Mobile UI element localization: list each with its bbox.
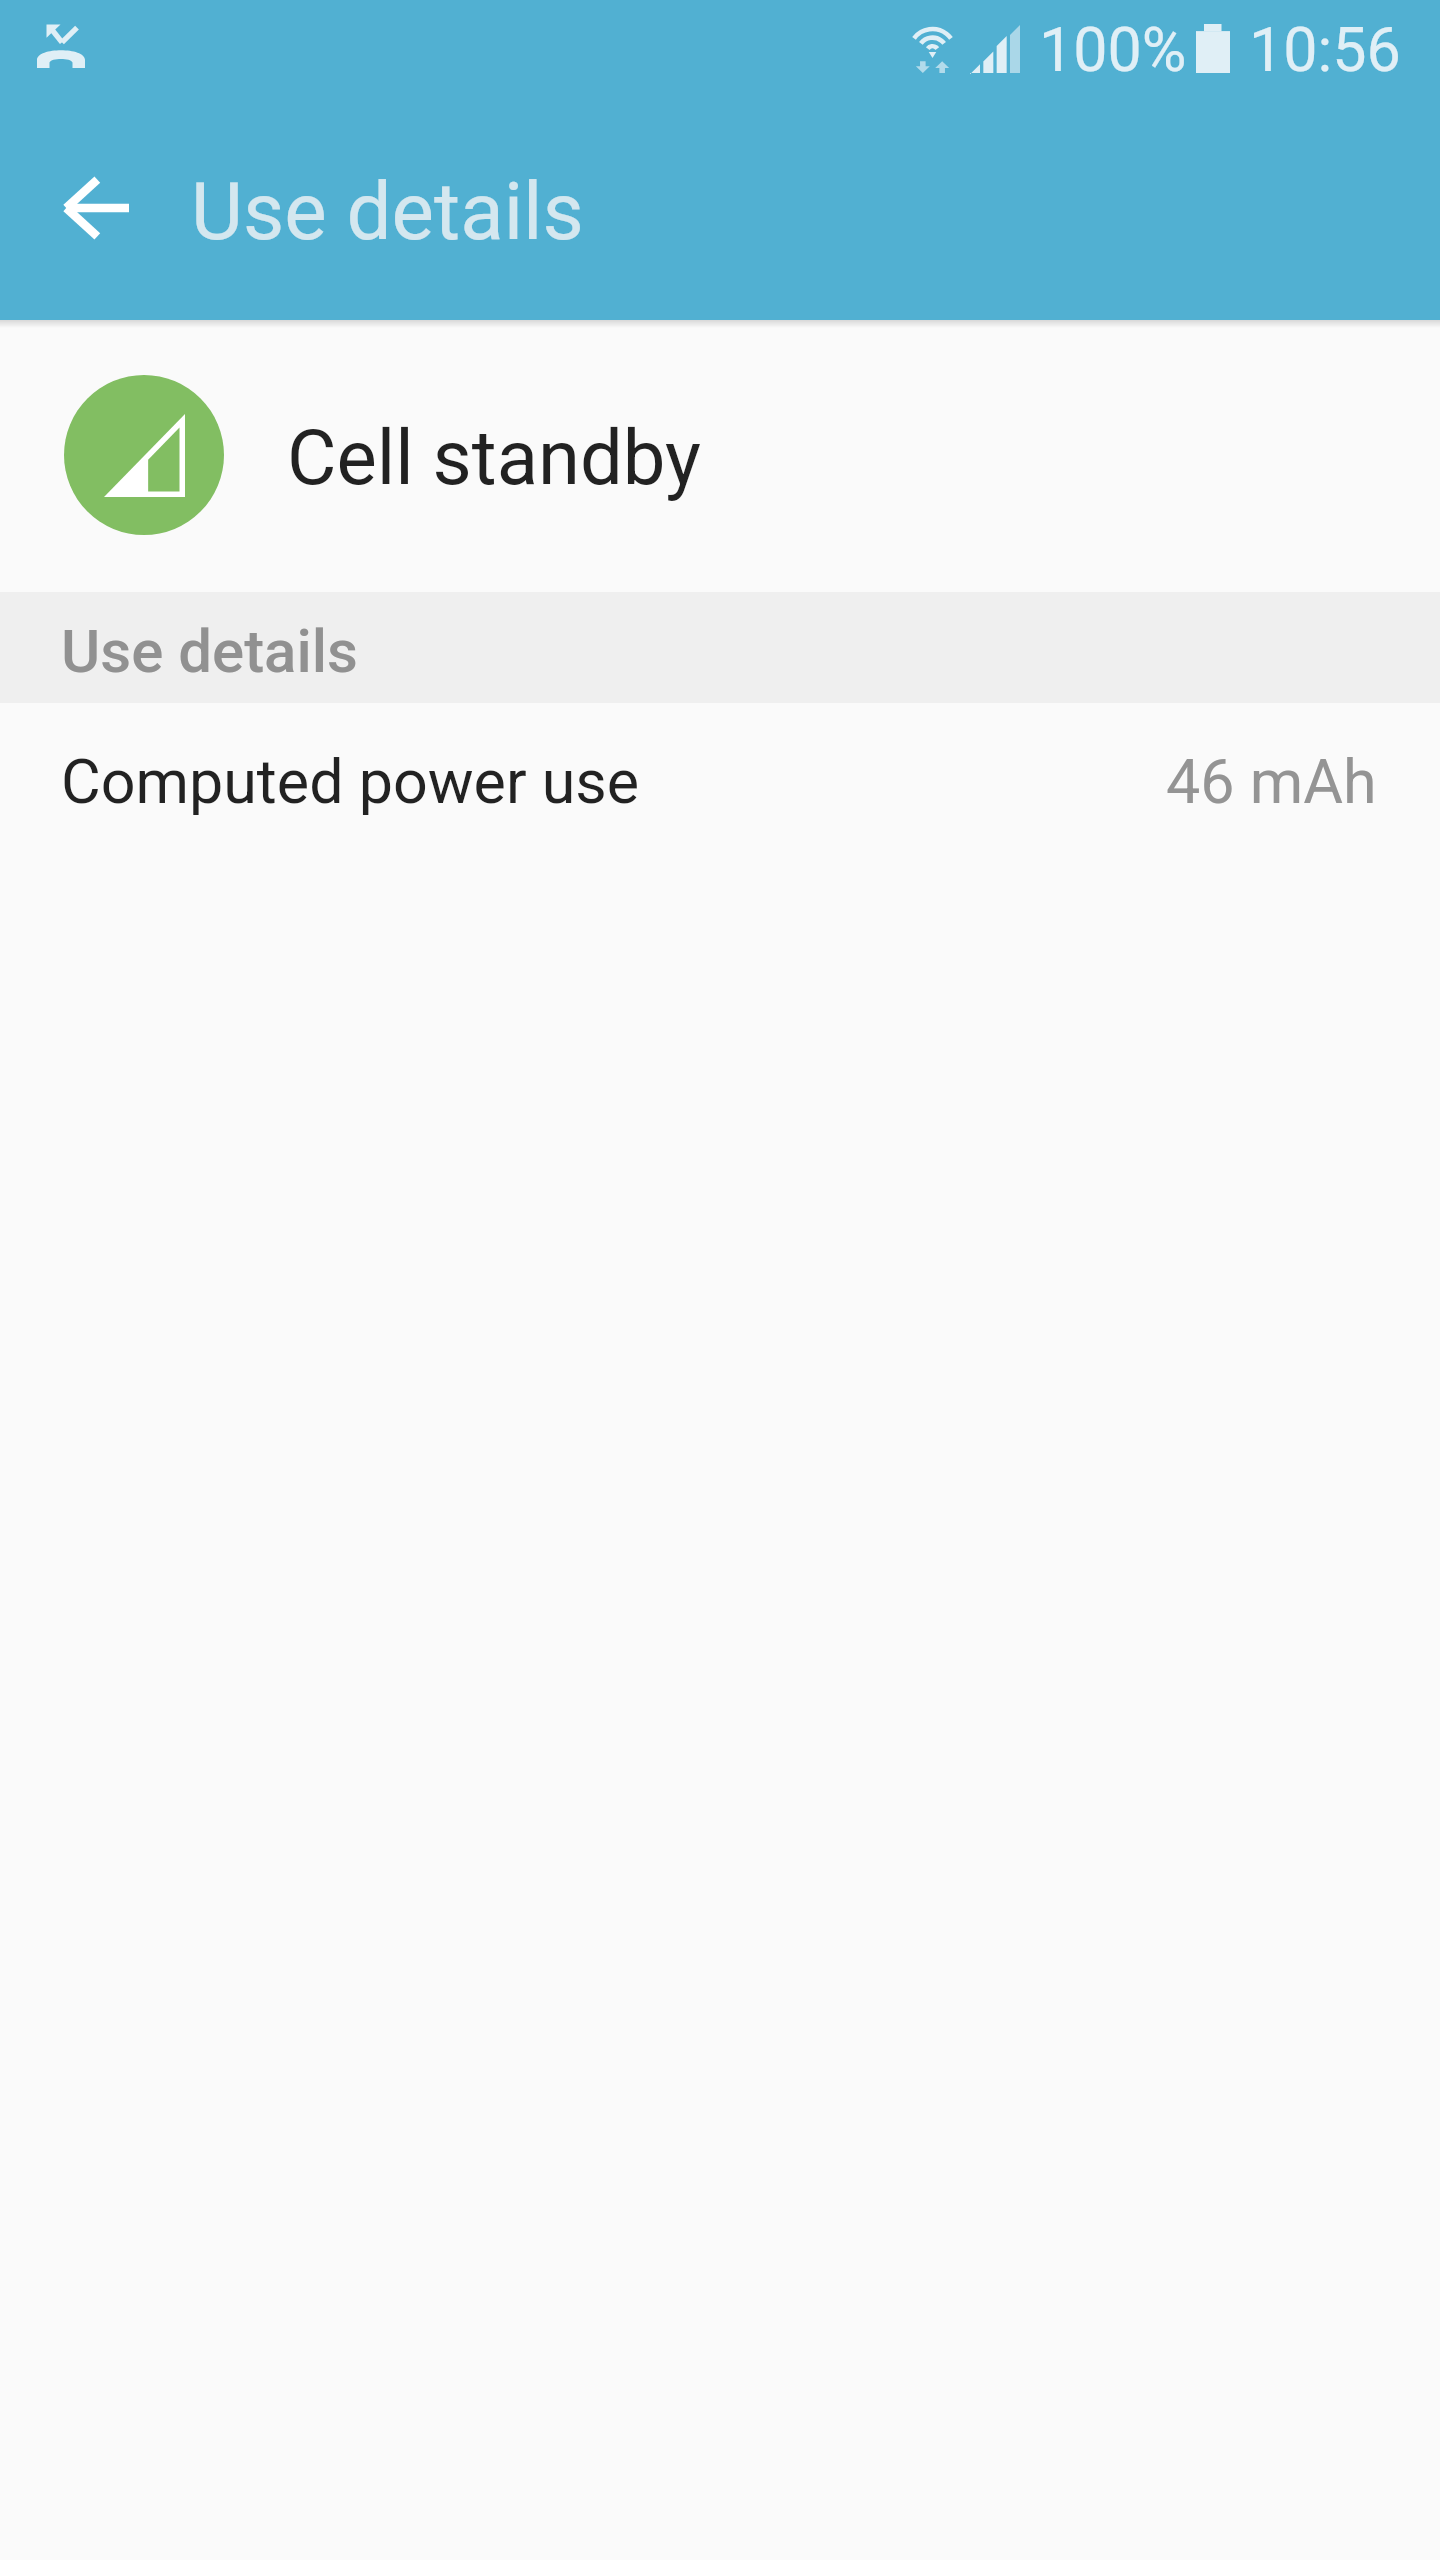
staticText: 10:56	[1249, 14, 1401, 85]
staticText: Use details	[191, 165, 584, 259]
staticText: Cell standby	[287, 413, 702, 502]
staticText: Use details	[61, 616, 358, 686]
staticText: 46 mAh	[1166, 746, 1377, 817]
button[interactable]: Cell standby	[0, 328, 1440, 592]
staticText: 100%	[1039, 14, 1187, 85]
staticText: Computed power use	[61, 746, 640, 817]
button[interactable]: Navigate up	[16, 128, 176, 288]
button[interactable]: Computed power use	[0, 703, 1440, 875]
